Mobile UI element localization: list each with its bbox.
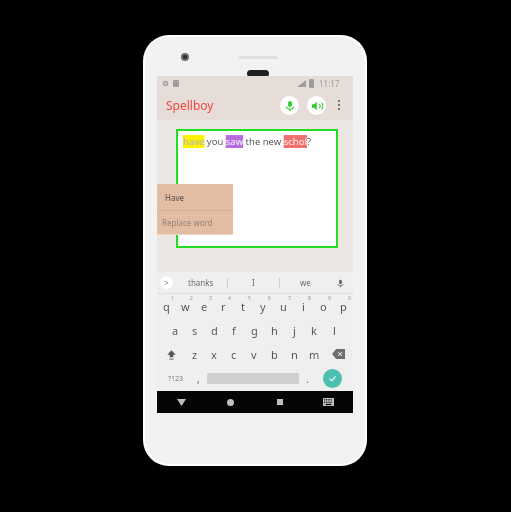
button[interactable]: i [293,294,313,318]
staticText: y [260,299,266,314]
staticText: 9 [328,295,331,302]
staticText: k [311,323,317,338]
button[interactable]: y [253,294,273,318]
staticText: have you saw the new schol? [183,135,312,148]
button[interactable]: Back [157,391,206,413]
staticText: t [241,299,245,314]
staticText: q [163,299,170,314]
staticText: Spellboy [166,97,214,113]
staticText: 6 [268,295,271,302]
button[interactable]: b [264,342,284,366]
button[interactable]: . [299,366,316,391]
button[interactable]: ?123 [161,366,190,391]
staticText: 3 [209,295,212,302]
staticText: . [306,372,309,386]
staticText: w [181,299,190,314]
button[interactable]: c [224,342,244,366]
button[interactable]: e [195,294,214,318]
staticText: 0 [348,295,351,302]
button[interactable]: o [313,294,333,318]
staticText: Have [165,192,184,203]
staticText: o [320,299,327,314]
staticText: 5 [248,295,251,302]
button[interactable]: f [224,318,244,342]
button[interactable]: we [280,272,331,293]
staticText: > [164,277,169,288]
button[interactable]: s [185,318,204,342]
staticText: 4 [228,295,231,302]
staticText: thanks [188,277,214,288]
staticText: i [302,299,305,314]
button[interactable]: n [284,342,304,366]
staticText: c [231,347,237,362]
button[interactable]: x [204,342,224,366]
button[interactable]: Voice input [280,96,299,115]
button[interactable]: Backspace [324,342,353,366]
button[interactable]: m [304,342,324,366]
button[interactable]: Enter [323,369,342,388]
staticText: n [291,347,298,362]
staticText: we [300,277,311,288]
button[interactable]: k [304,318,324,342]
button[interactable]: h [264,318,284,342]
staticText: I [252,277,255,288]
button[interactable]: u [273,294,293,318]
button[interactable]: Have [157,184,233,210]
staticText: h [271,323,278,338]
button[interactable]: Switch keyboard [304,391,353,413]
button[interactable]: Replace word [157,211,233,234]
button[interactable]: Shift [157,342,185,366]
button[interactable]: j [284,318,304,342]
button[interactable]: r [214,294,233,318]
staticText: x [211,347,217,362]
staticText: d [211,323,218,338]
staticText: j [293,323,296,338]
button[interactable]: t [233,294,253,318]
staticText: r [221,299,226,314]
staticText: 8 [308,295,311,302]
staticText: p [340,299,347,314]
button[interactable]: Speak [307,96,326,115]
staticText: 2 [190,295,193,302]
staticText: a [172,323,179,338]
button[interactable]: thanks [175,272,227,293]
button[interactable]: More options [333,94,345,116]
staticText: s [192,323,198,338]
button[interactable]: l [324,318,344,342]
staticText: m [309,347,320,362]
button[interactable]: q [157,294,176,318]
staticText: v [251,347,257,362]
staticText: u [280,299,287,314]
staticText: 11:17 [319,78,340,89]
staticText: l [333,323,336,338]
button[interactable]: Home [206,391,255,413]
button[interactable]: , [190,366,207,391]
button[interactable]: a [166,318,185,342]
staticText: ?123 [168,374,184,384]
button[interactable]: I [228,272,279,293]
staticText: f [232,323,236,338]
button[interactable]: d [204,318,224,342]
button[interactable]: w [176,294,195,318]
staticText: b [271,347,278,362]
button[interactable]: z [185,342,204,366]
button[interactable]: Recent apps [255,391,304,413]
button[interactable]: g [244,318,264,342]
staticText: Replace word [162,217,213,228]
staticText: g [251,323,258,338]
staticText: , [197,372,200,386]
button[interactable]: Expand suggestions [160,276,173,289]
staticText: 1 [171,295,174,302]
button[interactable]: v [244,342,264,366]
button[interactable]: p [333,294,353,318]
staticText: z [192,347,198,362]
staticText: e [201,299,208,314]
button[interactable]: Voice typing [333,276,347,290]
staticText: 7 [288,295,291,302]
